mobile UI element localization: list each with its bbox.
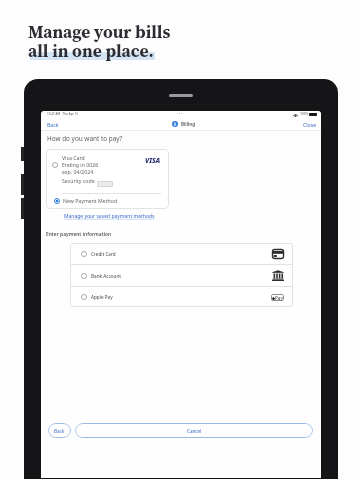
button[interactable]: Apple Pay	[70, 287, 293, 307]
button[interactable]: Bank Account	[70, 265, 293, 286]
staticText: Back	[54, 428, 65, 434]
staticText: Security code	[62, 177, 95, 184]
staticText: 10:47 AM Thu Apr 13	[47, 112, 79, 116]
staticText: • • •	[177, 112, 182, 116]
staticText: Ending in 0026	[62, 161, 99, 168]
staticText: Pay	[275, 295, 283, 301]
other: Bank account	[272, 270, 284, 281]
button[interactable]: Cancel	[75, 423, 313, 438]
button[interactable]: New Payment Method	[52, 195, 120, 206]
button[interactable]: Credit Card	[70, 243, 293, 264]
button[interactable]: Back	[48, 423, 71, 438]
other: Credit card	[272, 249, 284, 259]
button[interactable]: Manage your saved payment methods	[64, 213, 155, 220]
staticText: VISA	[145, 156, 161, 165]
staticText: Bank Account	[91, 273, 122, 279]
other: Apple Pay	[271, 294, 284, 301]
staticText: New Payment Method	[63, 197, 118, 204]
staticText: Apple Pay	[91, 294, 113, 300]
staticText: Enter payment information	[46, 231, 112, 238]
staticText: Credit Card	[91, 251, 116, 257]
staticText: all in one place.	[28, 39, 154, 63]
staticText: Cancel	[187, 428, 202, 434]
button[interactable]: Back	[47, 121, 59, 128]
staticText: exp. 04/2024	[62, 168, 94, 175]
staticText: 100%	[300, 112, 309, 116]
staticText: Visa Card	[62, 154, 85, 161]
staticText: How do you want to pay?	[47, 134, 123, 143]
staticText: Billing	[181, 121, 196, 127]
button[interactable]: Close	[303, 121, 317, 128]
staticText: Manage your bills	[28, 20, 171, 44]
